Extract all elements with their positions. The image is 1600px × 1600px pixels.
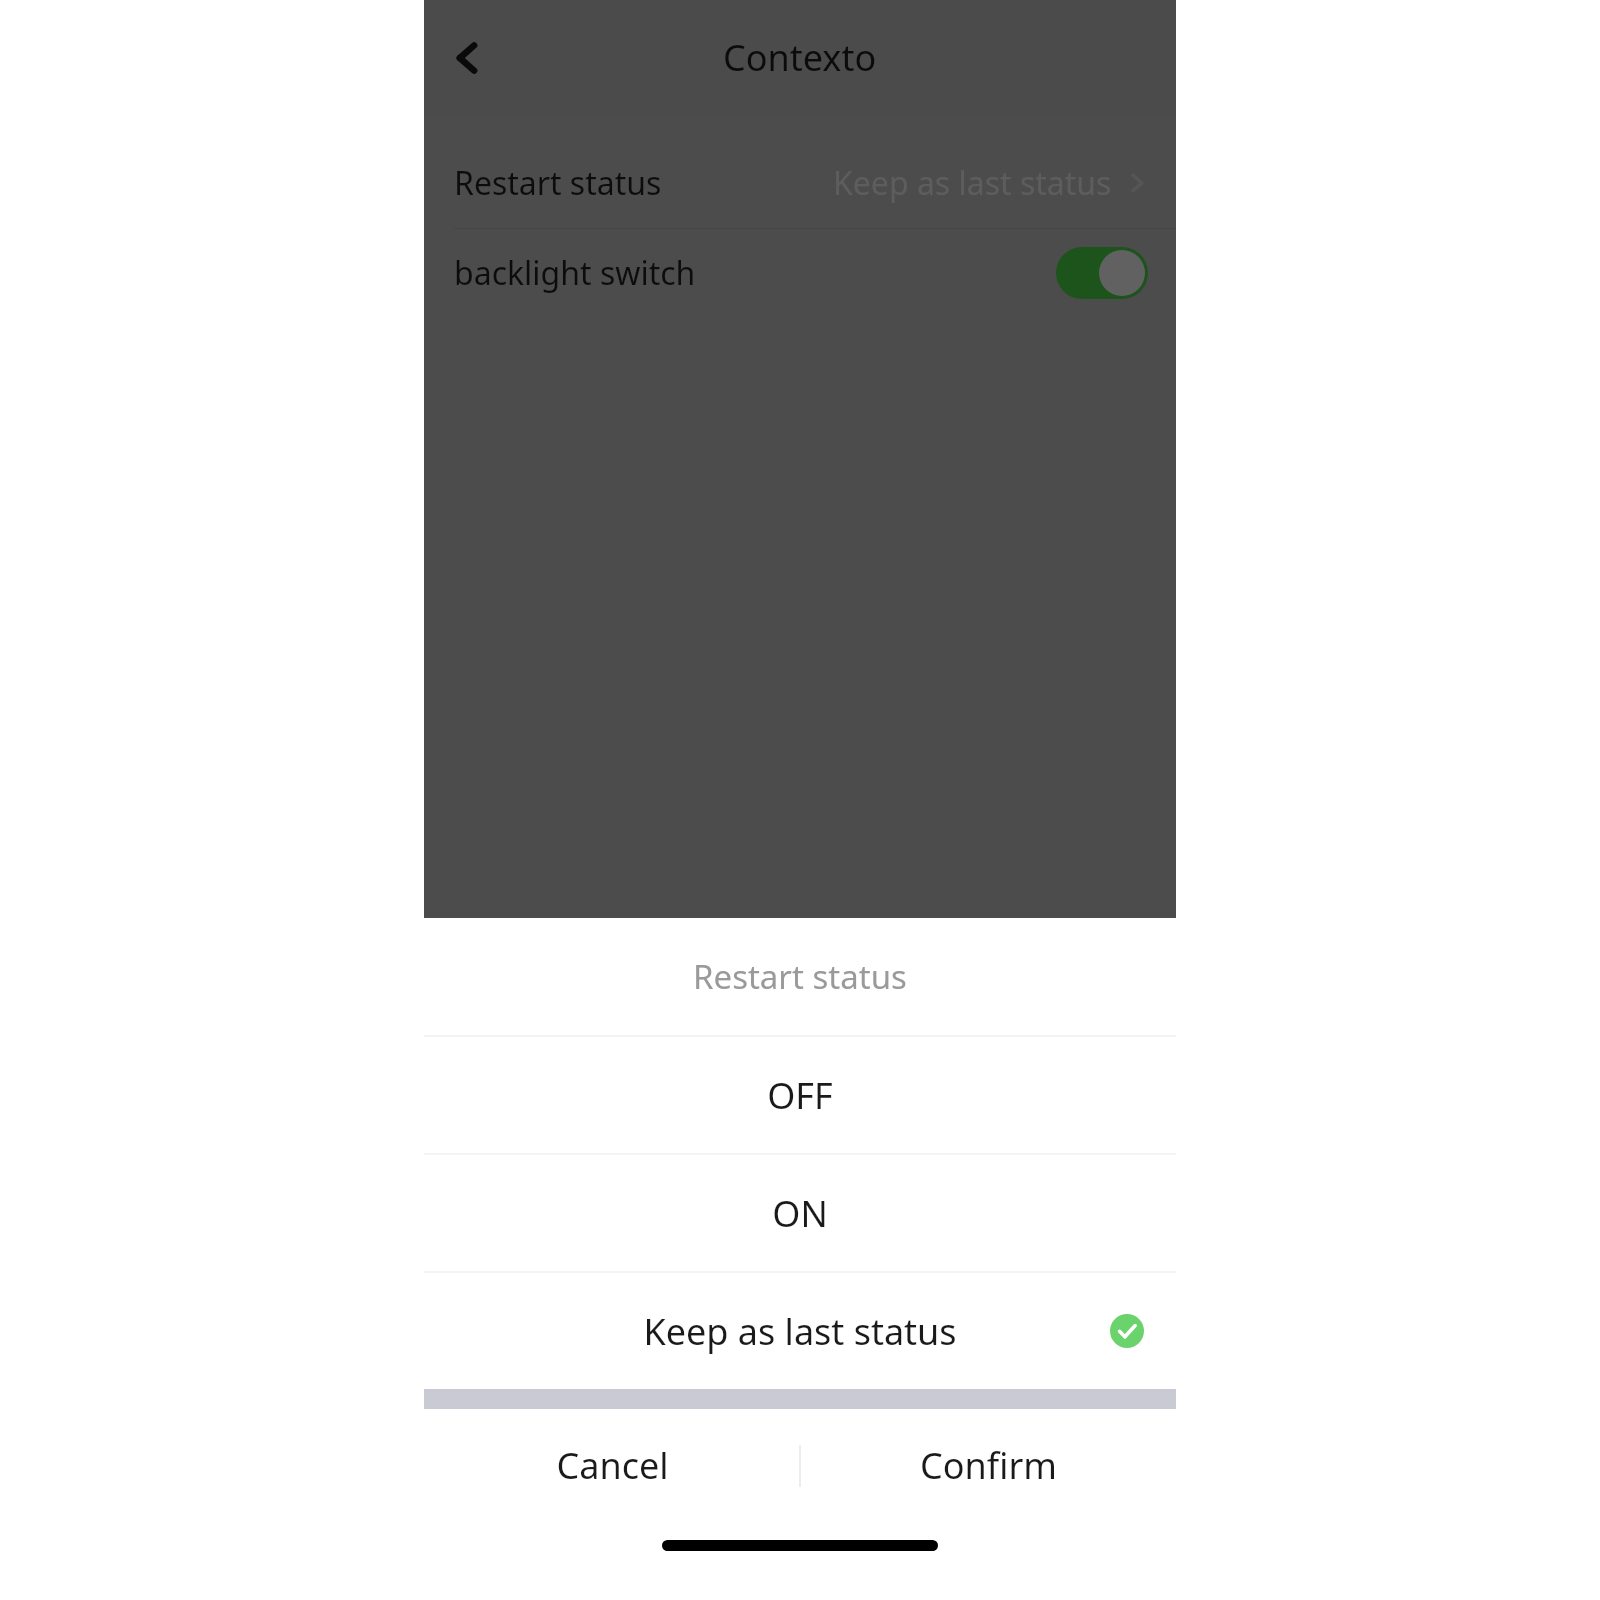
- button[interactable]: Back: [438, 28, 498, 88]
- staticText: backlight switch: [454, 251, 696, 295]
- button[interactable]: backlight switch: [424, 229, 1176, 317]
- staticText: Restart status: [693, 954, 907, 999]
- staticText: Confirm: [920, 1441, 1057, 1490]
- staticText: Contexto: [723, 33, 877, 82]
- button[interactable]: Cancel: [424, 1409, 800, 1522]
- staticText: Cancel: [556, 1441, 669, 1490]
- button[interactable]: Backlight switch: [1056, 247, 1148, 299]
- button[interactable]: Restart status: [424, 137, 1176, 228]
- staticText: Restart status: [454, 161, 662, 205]
- staticText: ON: [772, 1189, 828, 1238]
- button[interactable]: ON: [424, 1155, 1176, 1271]
- staticText: Keep as last status: [833, 161, 1112, 205]
- button[interactable]: Confirm: [800, 1409, 1176, 1522]
- button[interactable]: OFF: [424, 1037, 1176, 1153]
- staticText: OFF: [767, 1071, 833, 1120]
- button[interactable]: Keep as last status: [424, 1273, 1176, 1389]
- staticText: Keep as last status: [643, 1307, 957, 1356]
